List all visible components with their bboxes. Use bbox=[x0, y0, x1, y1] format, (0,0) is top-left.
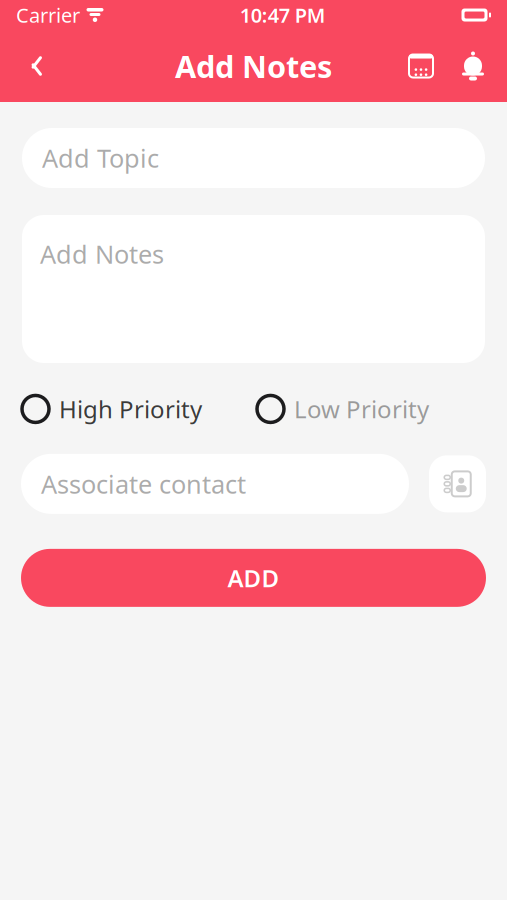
staticText: ADD bbox=[227, 562, 279, 594]
button[interactable]: Choose contact bbox=[429, 455, 486, 512]
button[interactable]: Back bbox=[8, 40, 60, 92]
button[interactable]: Low Priority bbox=[257, 387, 429, 431]
button[interactable]: Add Topic bbox=[22, 128, 485, 188]
staticText: Add Topic bbox=[42, 141, 159, 175]
button[interactable]: Notifications bbox=[447, 40, 499, 92]
staticText: Add Notes bbox=[40, 237, 164, 271]
staticText: 10:47 PM bbox=[240, 2, 326, 28]
button[interactable]: Calendar bbox=[395, 40, 447, 92]
button[interactable]: Associate contact bbox=[21, 454, 409, 514]
button[interactable]: ADD bbox=[21, 549, 486, 607]
staticText: High Priority bbox=[59, 393, 202, 425]
staticText: Add Notes bbox=[175, 46, 332, 86]
button[interactable]: Add Notes bbox=[22, 215, 485, 363]
button[interactable]: High Priority bbox=[22, 387, 202, 431]
staticText: Carrier bbox=[16, 2, 80, 28]
staticText: Associate contact bbox=[41, 467, 246, 501]
staticText: Low Priority bbox=[294, 393, 429, 425]
